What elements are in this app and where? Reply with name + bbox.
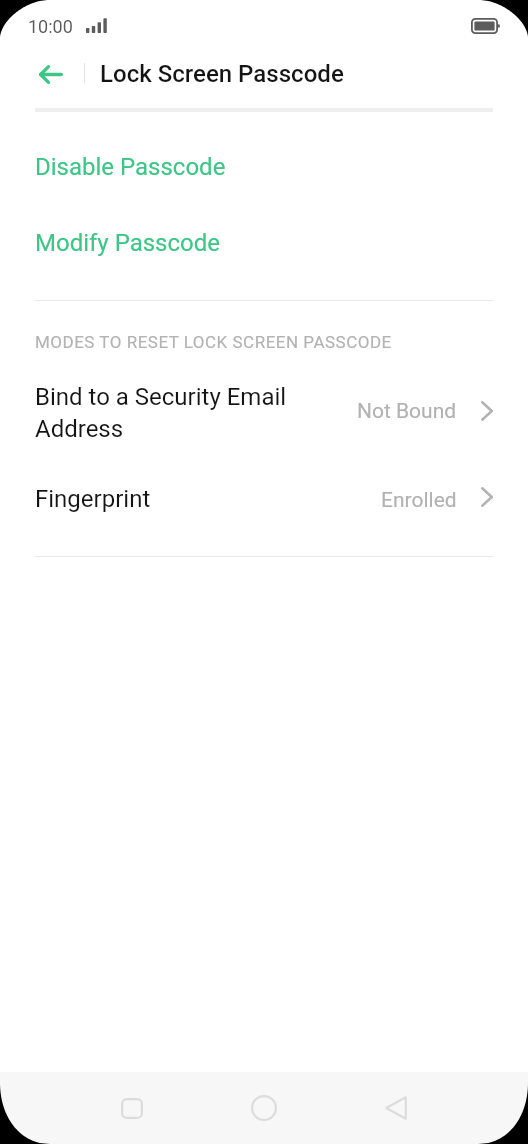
staticText: 10:00 bbox=[28, 16, 73, 37]
staticText: Modify Passcode bbox=[35, 229, 221, 257]
staticText: Not Bound bbox=[357, 399, 457, 424]
button[interactable]: Home bbox=[228, 1072, 300, 1144]
button[interactable]: Back bbox=[360, 1072, 432, 1144]
button[interactable]: Bind to a Security Email Address bbox=[0, 370, 528, 461]
button[interactable]: Disable Passcode bbox=[0, 133, 528, 201]
staticText: MODES TO RESET LOCK SCREEN PASSCODE bbox=[35, 332, 392, 352]
button[interactable]: Fingerprint bbox=[0, 462, 528, 544]
staticText: Fingerprint bbox=[35, 485, 297, 513]
staticText: Disable Passcode bbox=[35, 153, 226, 181]
button[interactable]: Recent apps bbox=[96, 1072, 168, 1144]
button[interactable]: Modify Passcode bbox=[0, 209, 528, 277]
staticText: Lock Screen Passcode bbox=[100, 60, 344, 88]
staticText: Bind to a Security Email Address bbox=[35, 383, 297, 442]
staticText: Enrolled bbox=[381, 488, 457, 513]
button[interactable]: Back bbox=[27, 50, 75, 98]
